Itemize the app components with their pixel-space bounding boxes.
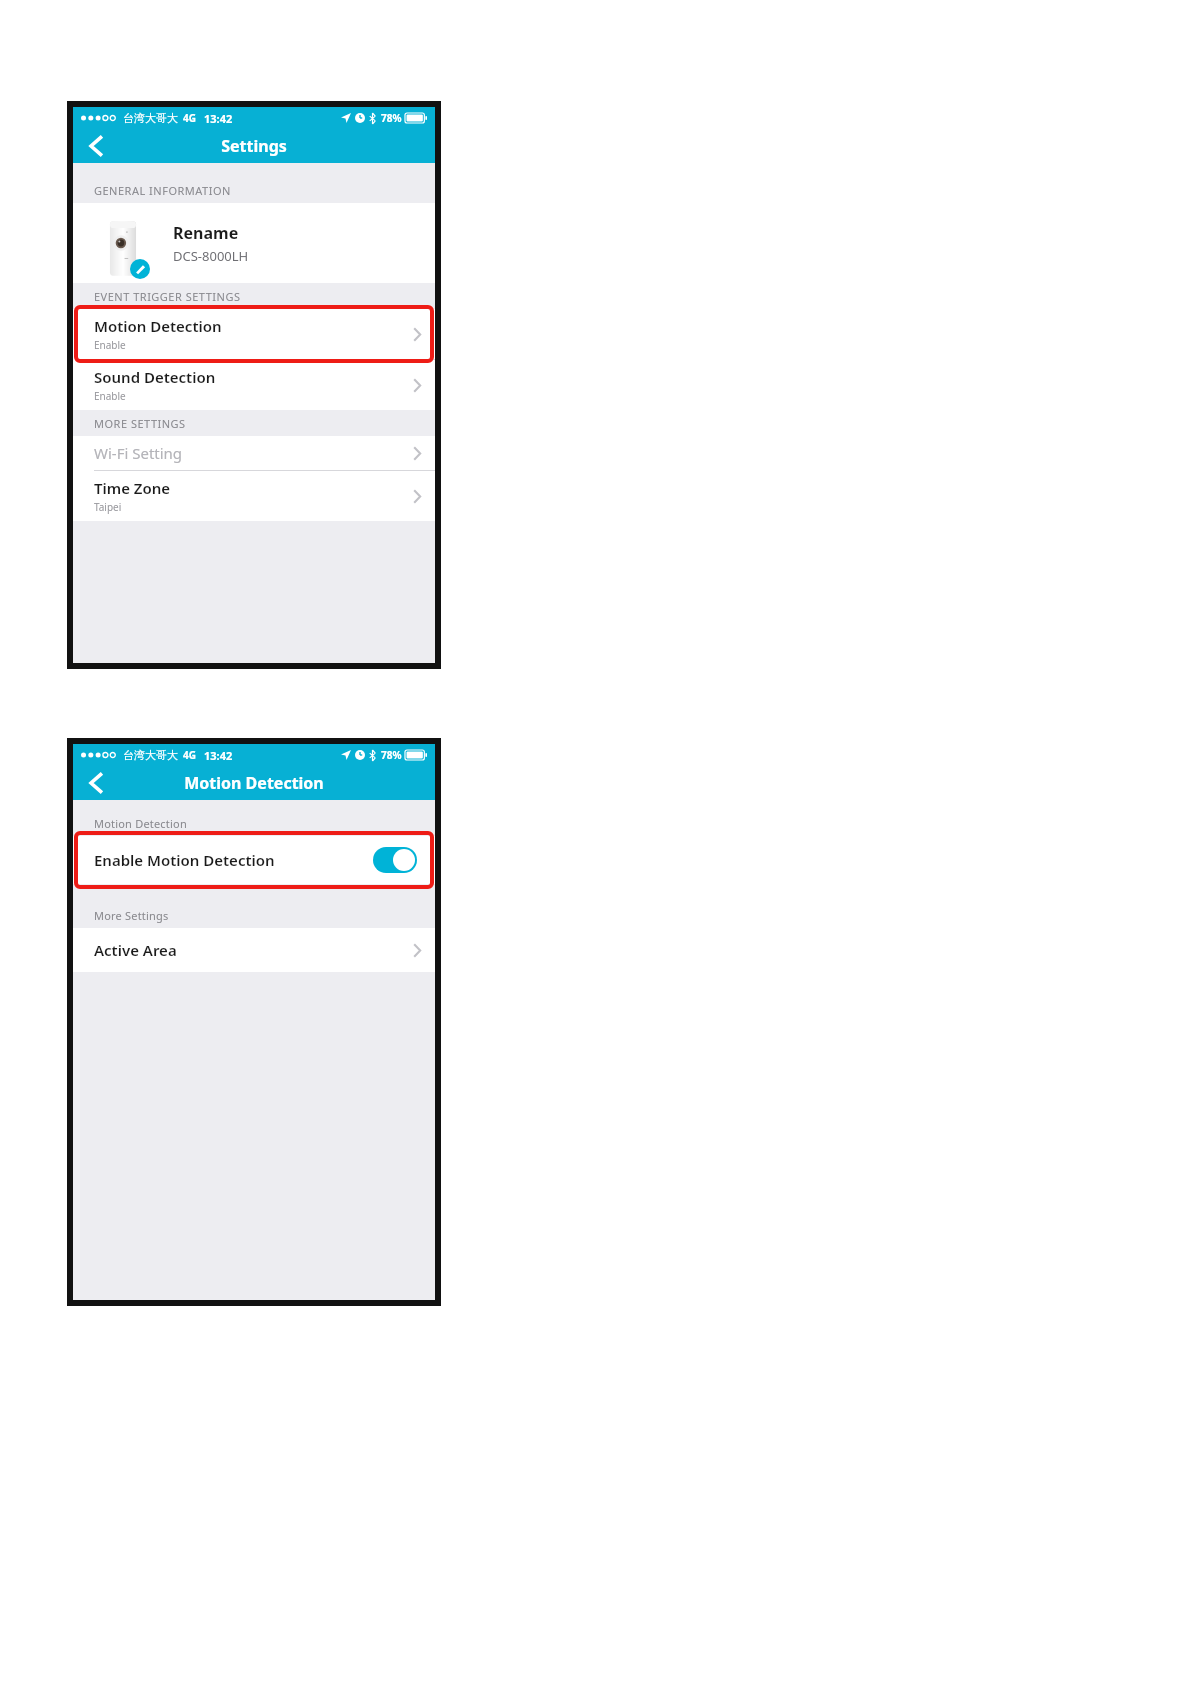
staticText: Active Area: [94, 940, 177, 960]
staticText: 4G: [183, 111, 196, 125]
staticText: 13:42: [204, 111, 233, 126]
button[interactable]: Motion Detection: [73, 309, 435, 359]
staticText: MORE SETTINGS: [94, 416, 186, 431]
staticText: Motion Detection: [184, 772, 324, 794]
staticText: Taipei: [94, 500, 122, 514]
staticText: Time Zone: [94, 478, 171, 498]
staticText: Motion Detection: [94, 316, 222, 336]
staticText: Wi-Fi Setting: [94, 443, 183, 463]
staticText: Enable: [94, 389, 126, 403]
staticText: 78%: [381, 748, 402, 762]
staticText: GENERAL INFORMATION: [94, 183, 231, 198]
staticText: Rename: [173, 222, 239, 244]
button[interactable]: Enable Motion Detection toggle: [373, 847, 417, 873]
button[interactable]: Time Zone: [73, 471, 435, 521]
button[interactable]: Back: [73, 129, 119, 163]
staticText: Enable: [94, 338, 126, 352]
button[interactable]: Edit: [73, 203, 435, 283]
staticText: DCS-8000LH: [173, 247, 249, 265]
button[interactable]: Active Area: [73, 928, 435, 972]
staticText: 78%: [381, 111, 402, 125]
staticText: EVENT TRIGGER SETTINGS: [94, 289, 241, 304]
button[interactable]: Edit: [130, 259, 150, 279]
staticText: 台湾大哥大: [123, 748, 178, 762]
staticText: 台湾大哥大: [123, 111, 178, 125]
staticText: 13:42: [204, 748, 233, 763]
button[interactable]: Back: [73, 766, 119, 800]
staticText: Settings: [221, 135, 287, 157]
button[interactable]: Enable Motion Detection: [73, 836, 435, 884]
staticText: Motion Detection: [94, 816, 187, 831]
button[interactable]: Wi-Fi Setting: [73, 436, 435, 470]
staticText: 4G: [183, 748, 196, 762]
staticText: Sound Detection: [94, 367, 216, 387]
button[interactable]: Sound Detection: [73, 360, 435, 410]
staticText: Enable Motion Detection: [94, 850, 373, 870]
staticText: More Settings: [94, 908, 169, 923]
